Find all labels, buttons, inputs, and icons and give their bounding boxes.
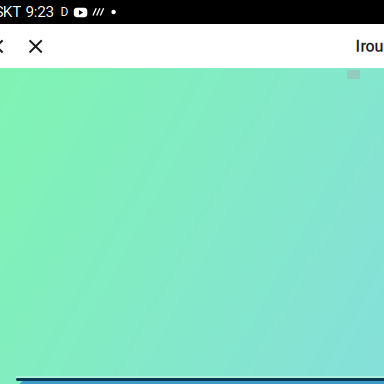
staticText: Irou <box>355 37 383 56</box>
button[interactable]: Irou <box>0 28 28 64</box>
staticText: D <box>61 5 69 19</box>
button[interactable]: Close <box>0 28 36 64</box>
staticText: 9:23 <box>25 3 54 21</box>
staticText: SKT <box>0 3 21 21</box>
button[interactable]: Back <box>0 28 36 64</box>
